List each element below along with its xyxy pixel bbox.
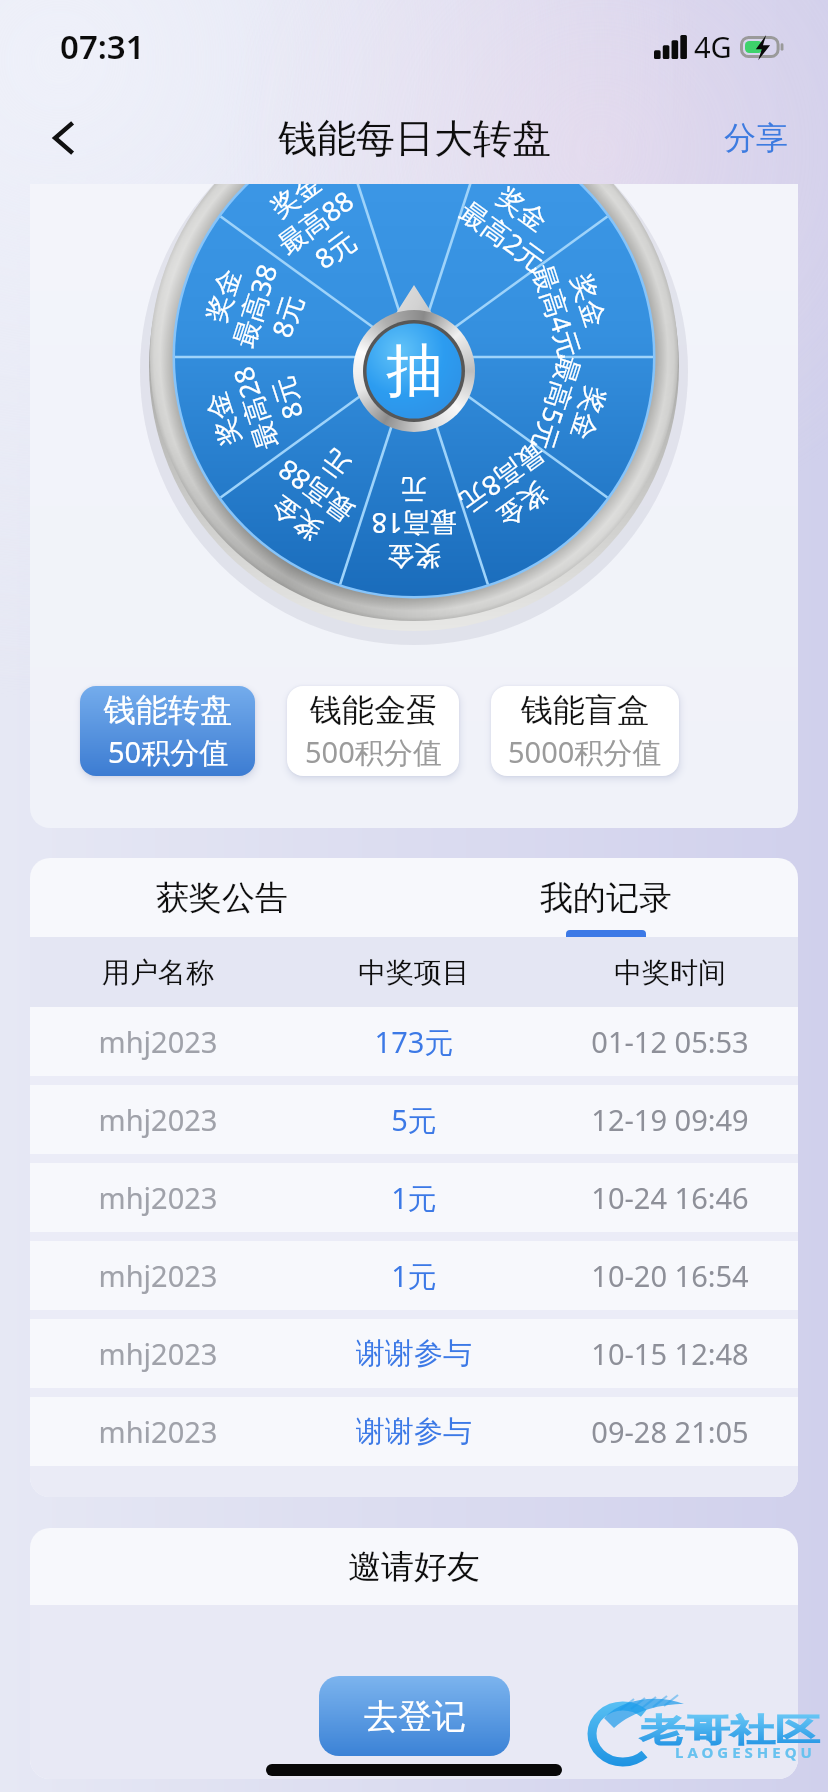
staticText: 钱能盲盒 xyxy=(521,690,649,730)
staticText: 邀请好友 xyxy=(348,1546,480,1588)
staticText: 12-19 09:49 xyxy=(542,1100,798,1139)
staticText: 1元 xyxy=(286,1178,542,1218)
button[interactable]: mhi2023 xyxy=(30,1397,798,1466)
button[interactable]: Back xyxy=(34,107,96,169)
button[interactable]: 钱能金蛋 xyxy=(287,686,459,776)
staticText: 我的记录 xyxy=(540,877,672,919)
staticText: mhj2023 xyxy=(30,1100,286,1139)
staticText: 奖金 最高2元 xyxy=(447,184,576,283)
button[interactable]: 钱能盲盒 xyxy=(491,686,679,776)
staticText: 奖金 最高4元 xyxy=(523,243,621,369)
button[interactable]: mhj2023 xyxy=(30,1007,798,1076)
staticText: 4G xyxy=(694,27,732,66)
staticText: 谢谢参与 xyxy=(286,1335,542,1372)
staticText: mhj2023 xyxy=(30,1022,286,1061)
button[interactable]: mhj2023 xyxy=(30,1163,798,1232)
staticText: 5元 xyxy=(286,1100,542,1140)
staticText: mhi2023 xyxy=(30,1412,286,1451)
button[interactable]: 去登记 xyxy=(319,1676,510,1756)
staticText: 奖金 最高88 元 xyxy=(242,417,390,564)
button[interactable]: mhj2023 xyxy=(30,1085,798,1154)
staticText: 50积分值 xyxy=(108,732,229,772)
staticText: 09-28 21:05 xyxy=(542,1412,798,1451)
staticText: 用户名称 xyxy=(30,955,286,990)
button[interactable]: 钱能转盘 xyxy=(80,686,255,776)
staticText: 5000积分值 xyxy=(508,732,662,772)
staticText: 07:31 xyxy=(60,24,145,69)
staticText: 分享 xyxy=(724,118,788,158)
button[interactable]: 分享 xyxy=(712,108,800,168)
staticText: 10-20 16:54 xyxy=(542,1256,798,1295)
staticText xyxy=(359,184,469,210)
staticText: 奖金 最高5元 xyxy=(523,345,621,471)
staticText: 奖金 最高38 8元 xyxy=(190,238,321,374)
staticText: 抽 xyxy=(386,335,443,407)
button[interactable]: 获奖公告 xyxy=(30,858,414,937)
staticText: 钱能金蛋 xyxy=(310,690,438,730)
staticText: 10-24 16:46 xyxy=(542,1178,798,1217)
staticText: 1元 xyxy=(286,1256,542,1296)
staticText: 01-12 05:53 xyxy=(542,1022,798,1061)
staticText: 奖金 最高88 8元 xyxy=(241,184,390,297)
button[interactable]: mhj2023 xyxy=(30,1241,798,1310)
staticText: 老哥社区 xyxy=(640,1711,820,1750)
staticText: 500积分值 xyxy=(305,732,442,772)
staticText: 奖金 最高28 8元 xyxy=(190,340,321,476)
staticText: 中奖项目 xyxy=(286,955,542,990)
button[interactable]: 我的记录 xyxy=(414,858,798,937)
staticText: mhj2023 xyxy=(30,1256,286,1295)
staticText: 173元 xyxy=(286,1022,542,1062)
staticText: 中奖时间 xyxy=(542,955,798,990)
staticText: 去登记 xyxy=(364,1695,466,1738)
staticText: 获奖公告 xyxy=(156,877,288,919)
staticText: 10-15 12:48 xyxy=(542,1334,798,1373)
staticText: mhj2023 xyxy=(30,1334,286,1373)
staticText: LAOGESHEQU xyxy=(675,1742,816,1762)
staticText: 奖金 最高8元 xyxy=(447,431,576,551)
staticText: 钱能转盘 xyxy=(104,690,232,730)
staticText: 谢谢参与 xyxy=(286,1413,542,1450)
button[interactable]: mhj2023 xyxy=(30,1319,798,1388)
staticText: 钱能每日大转盘 xyxy=(278,114,551,163)
button[interactable]: 抽奖 xyxy=(352,309,476,433)
staticText: 奖金 最高18 元 xyxy=(359,472,469,573)
staticText: mhj2023 xyxy=(30,1178,286,1217)
